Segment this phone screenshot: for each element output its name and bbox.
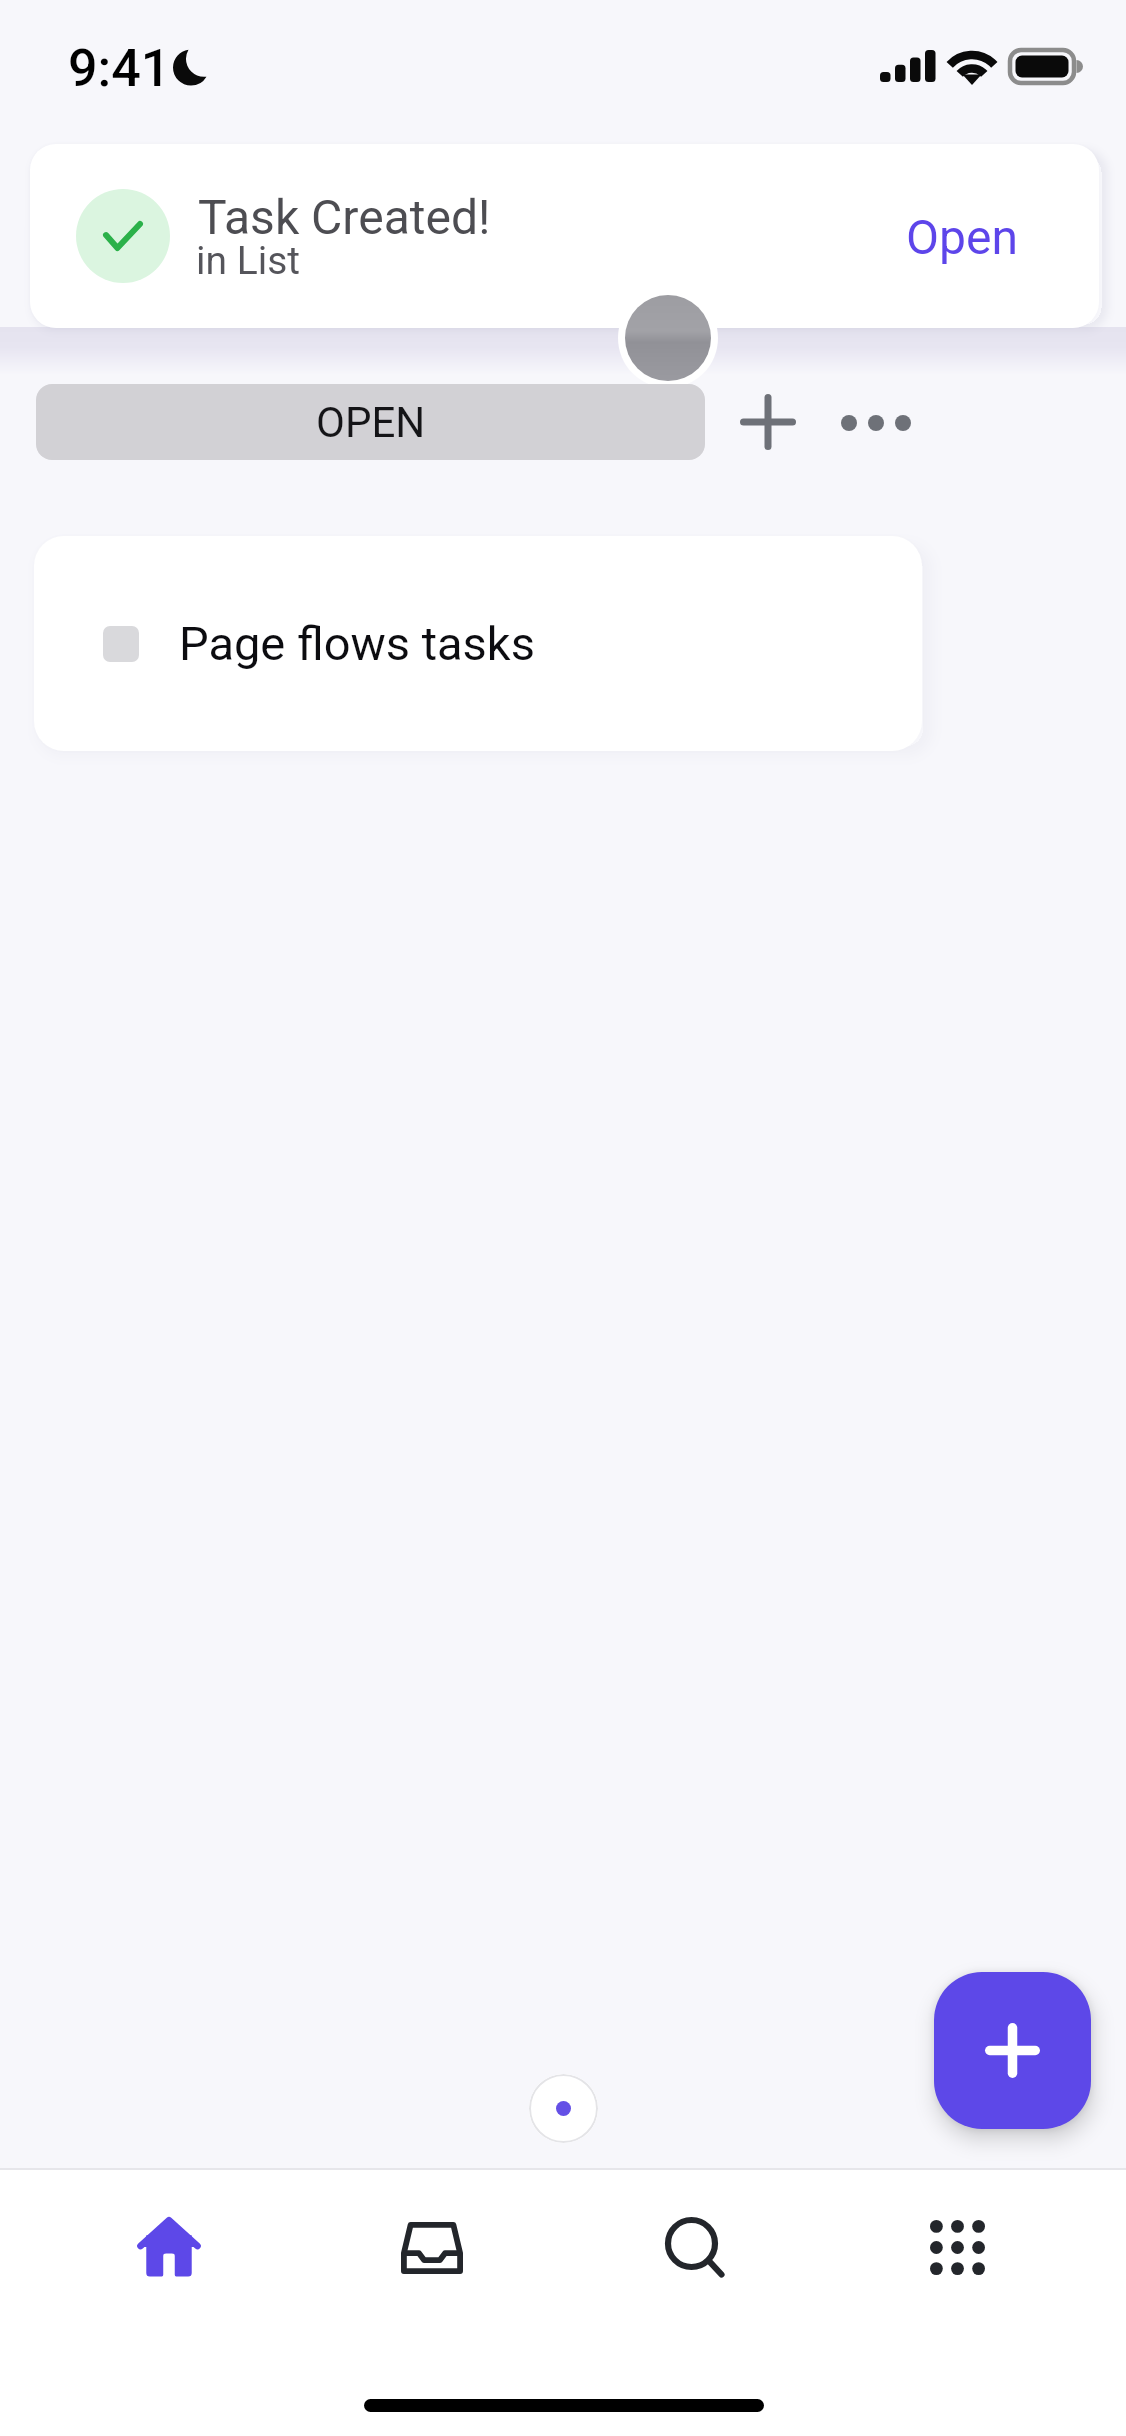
button[interactable]: Add	[723, 377, 813, 467]
button[interactable]: Apps	[826, 2200, 1089, 2295]
staticText: OPEN	[316, 398, 426, 447]
button[interactable]: Open	[892, 199, 1032, 275]
button[interactable]: Home	[37, 2200, 300, 2295]
button[interactable]: OPEN	[36, 384, 705, 460]
button[interactable]	[529, 2074, 598, 2143]
button[interactable]: Inbox	[300, 2200, 563, 2295]
button[interactable]: Task Created!	[30, 144, 1099, 328]
button[interactable]	[103, 626, 139, 662]
button[interactable]: Create task	[934, 1972, 1091, 2129]
staticText: Page flows tasks	[179, 616, 535, 671]
staticText: in List	[196, 238, 301, 284]
button[interactable]: Page flows tasks	[34, 536, 922, 751]
button[interactable]: Search	[563, 2200, 826, 2295]
button[interactable]: More options	[828, 383, 924, 463]
staticText: 9:41	[68, 38, 171, 99]
staticText: Task Created!	[198, 189, 491, 245]
button[interactable]: Profile	[625, 295, 711, 381]
